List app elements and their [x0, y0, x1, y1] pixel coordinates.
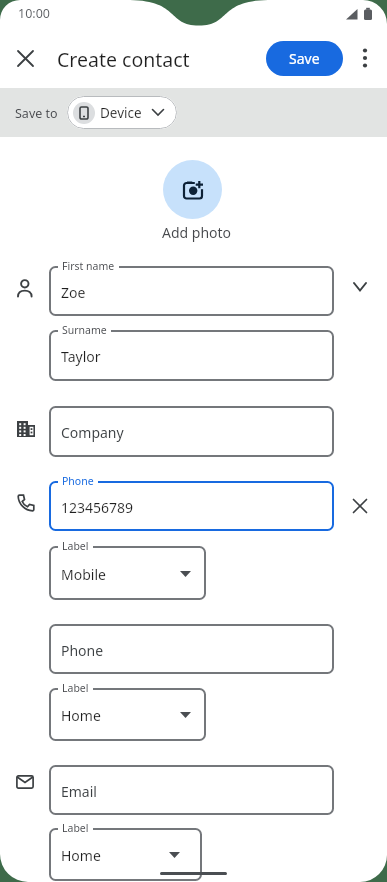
staticText: Label	[62, 681, 89, 695]
staticText: 10:00	[18, 5, 50, 22]
button[interactable]	[358, 48, 372, 68]
staticText: Taylor	[61, 347, 101, 366]
staticText: First name	[62, 259, 115, 273]
staticText: Home	[61, 846, 101, 865]
staticText: Label	[62, 539, 89, 553]
button[interactable]: Mobile	[49, 546, 206, 600]
staticText: Add photo	[162, 223, 232, 242]
button[interactable]: Email	[49, 765, 334, 815]
button[interactable]: Phone	[49, 624, 334, 674]
staticText: 123456789	[61, 498, 134, 517]
button[interactable]: Home	[49, 828, 202, 881]
staticText: Save	[289, 49, 320, 68]
button[interactable]	[353, 282, 367, 292]
button[interactable]: Zoe	[49, 266, 334, 316]
button[interactable]: Device	[67, 96, 177, 129]
staticText: Surname	[62, 323, 107, 337]
staticText: Label	[62, 821, 89, 835]
button[interactable]	[18, 51, 33, 66]
button[interactable]	[163, 160, 222, 219]
staticText: Device	[100, 104, 142, 122]
button[interactable]: Save	[266, 41, 343, 76]
staticText: Email	[61, 782, 97, 801]
staticText: Save to	[15, 105, 58, 122]
button[interactable]: 123456789	[49, 481, 334, 531]
button[interactable]: Company	[49, 406, 334, 457]
staticText: Zoe	[61, 283, 86, 302]
staticText: Phone	[61, 641, 104, 660]
button[interactable]: Taylor	[49, 330, 334, 381]
staticText: Phone	[62, 474, 94, 488]
staticText: Create contact	[57, 46, 190, 73]
staticText: Home	[61, 706, 101, 725]
staticText: Mobile	[61, 565, 106, 584]
button[interactable]	[353, 499, 367, 513]
button[interactable]: Home	[49, 688, 206, 741]
staticText: Company	[61, 423, 124, 442]
